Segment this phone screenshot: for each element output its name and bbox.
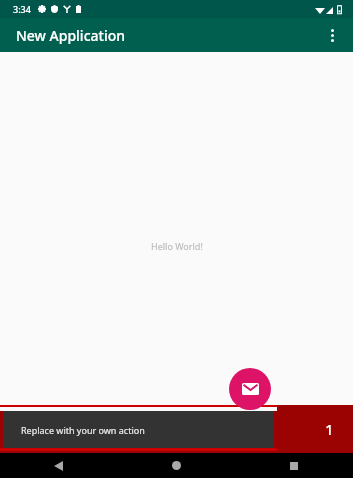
button[interactable]: Replace with your own action bbox=[3, 411, 274, 448]
staticText: 3:34 bbox=[13, 3, 31, 15]
button[interactable]: Back bbox=[0, 453, 117, 478]
button[interactable]: Home bbox=[117, 453, 235, 478]
staticText: Hello World! bbox=[151, 240, 203, 252]
staticText: Replace with your own action bbox=[21, 424, 145, 436]
button[interactable]: Send email bbox=[229, 368, 271, 410]
staticText: New Application bbox=[16, 26, 126, 45]
button[interactable]: More options bbox=[317, 20, 347, 50]
button[interactable]: Recents bbox=[235, 453, 353, 478]
staticText: 1 bbox=[325, 419, 334, 439]
